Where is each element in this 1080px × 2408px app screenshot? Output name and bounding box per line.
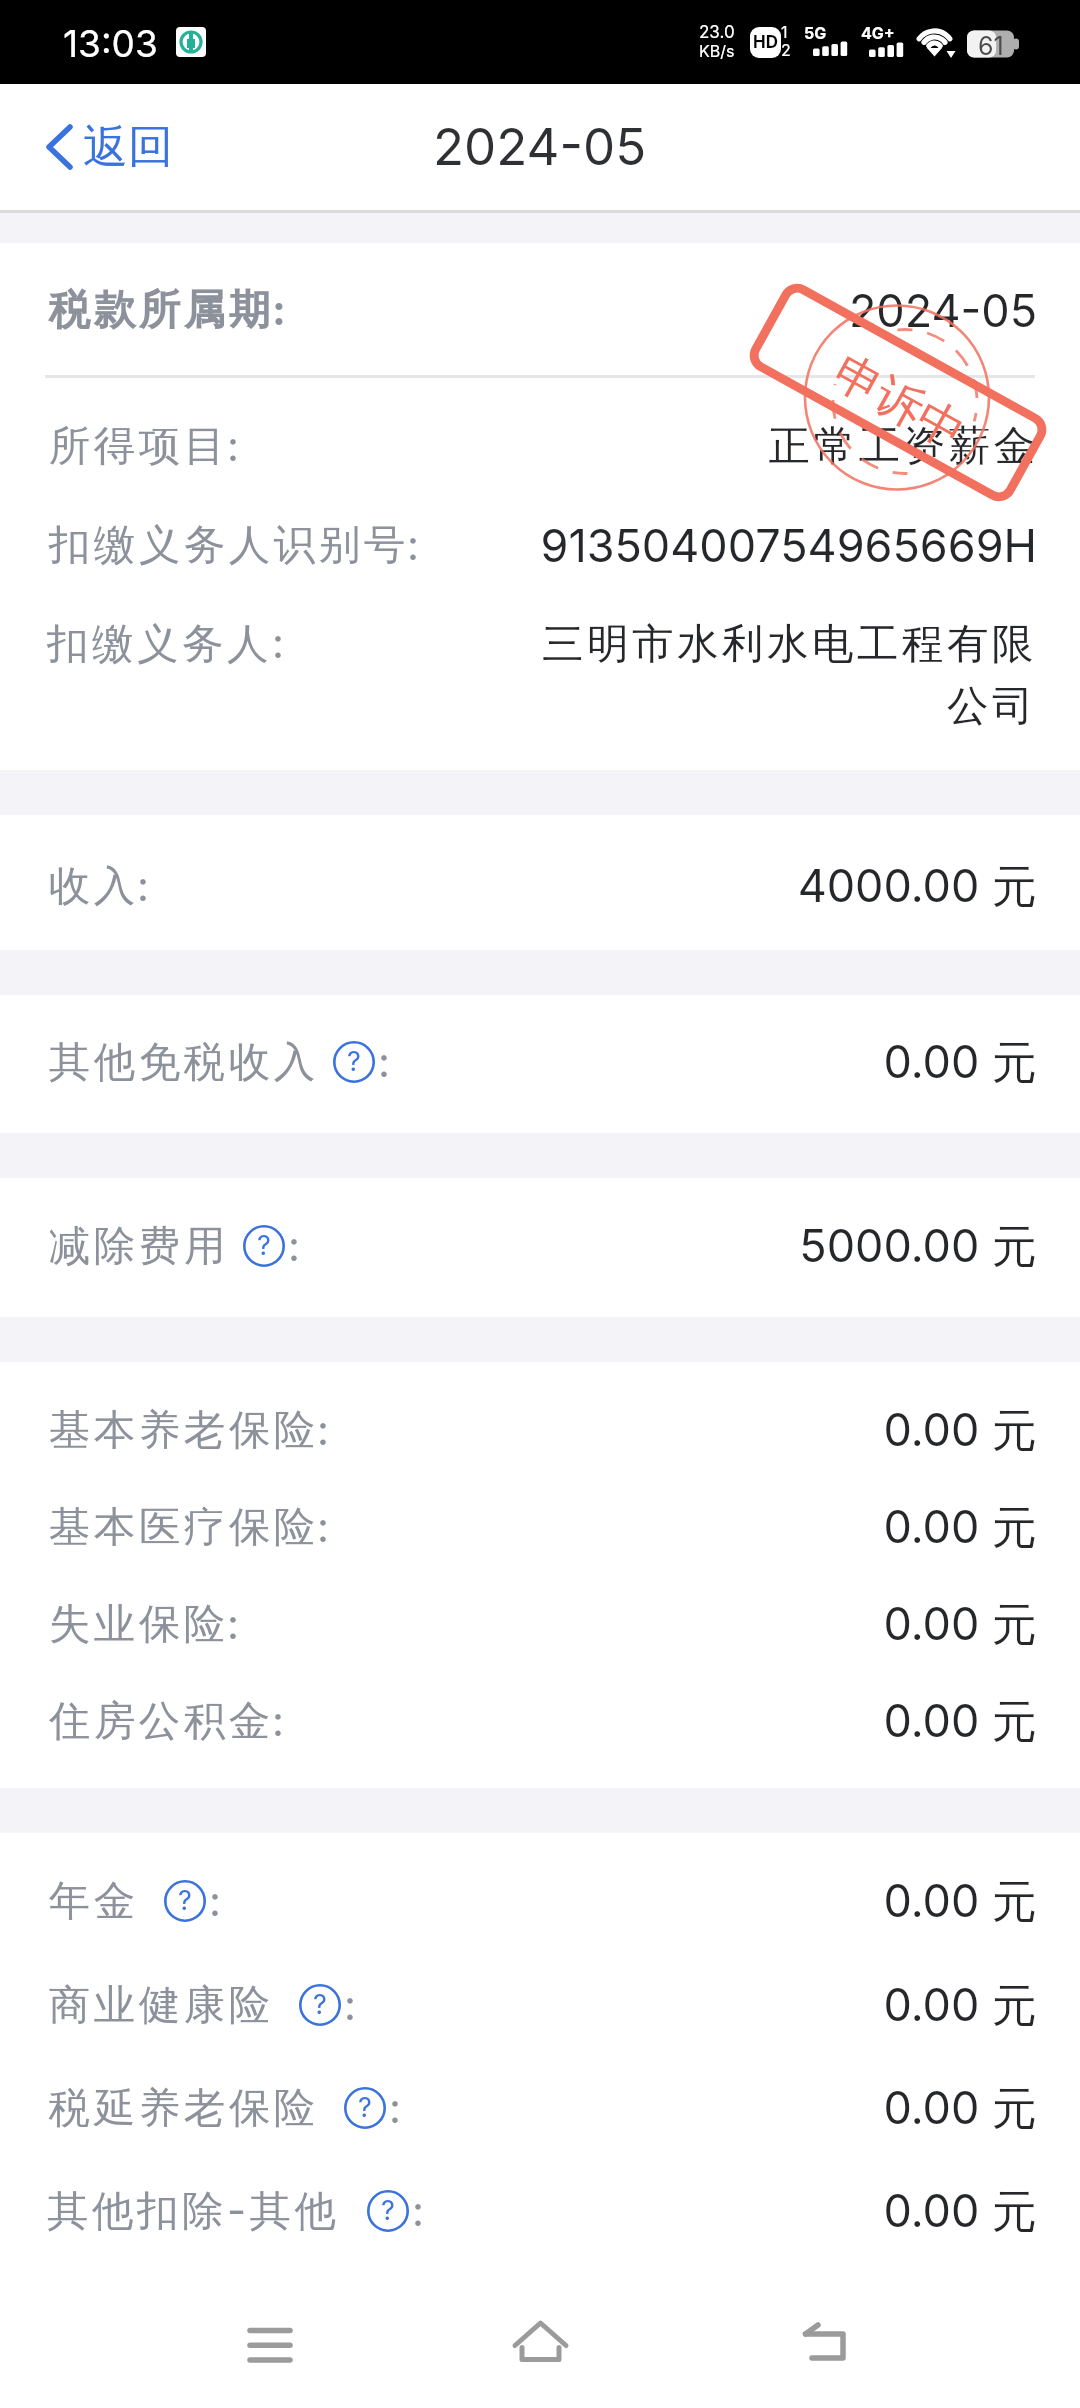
staticText: : (209, 1876, 225, 1926)
staticText: 扣缴义务人识别号 (47, 519, 407, 571)
staticText: 正常工资薪金 (767, 420, 1037, 472)
staticText: 0.00 元 (883, 1977, 1037, 2034)
staticText: ? (178, 1884, 192, 1917)
button[interactable]: 扣缴义务人: (0, 618, 1080, 733)
staticText: 1 (781, 22, 788, 41)
staticText: : (407, 520, 423, 570)
staticText: : (344, 1980, 360, 2030)
staticText: 0.00 元 (883, 1499, 1037, 1556)
staticText: 2024-05 (848, 283, 1037, 337)
button[interactable]: 主页 (480, 2282, 600, 2408)
staticText: 商业健康险 (47, 1979, 272, 2031)
staticText: : (227, 421, 243, 471)
staticText: 税款所属期 (47, 284, 272, 336)
staticText: 住房公积金 (47, 1695, 272, 1747)
staticText: : (272, 285, 290, 335)
staticText: 2024-05 (433, 116, 647, 178)
staticText: 其他扣除-其他 (47, 2185, 340, 2238)
staticText: 13:03 (63, 21, 158, 66)
button[interactable]: 说明 (344, 2087, 386, 2129)
staticText: 返回 (83, 119, 173, 176)
staticText: : (272, 1696, 288, 1746)
button[interactable]: 收入 (0, 837, 1080, 935)
staticText: 扣缴义务人: (47, 618, 288, 671)
button[interactable]: 减除费用 (0, 1197, 1080, 1295)
staticText: ? (313, 1988, 327, 2021)
staticText: 0.00 元 (883, 1693, 1037, 1750)
button[interactable]: 说明 (367, 2190, 409, 2232)
staticText: 2 (781, 40, 791, 59)
button[interactable]: 税款所属期 (0, 261, 1080, 359)
staticText: : (378, 1037, 394, 1087)
staticText: 23.0 (699, 22, 735, 43)
staticText: 其他免税收入 (47, 1036, 317, 1088)
staticText: : (288, 1221, 304, 1271)
staticText: 所得项目 (47, 420, 227, 472)
button[interactable]: 说明 (243, 1225, 285, 1267)
staticText: 4000.00 元 (797, 858, 1037, 915)
button[interactable]: 失业保险 (0, 1575, 1080, 1673)
button[interactable]: 最近任务 (210, 2282, 330, 2408)
button[interactable]: 商业健康险 (0, 1956, 1080, 2054)
staticText: 0.00 元 (883, 2080, 1037, 2137)
staticText: : (137, 861, 153, 911)
staticText: : (317, 1502, 333, 1552)
button[interactable]: 税延养老保险 (0, 2059, 1080, 2157)
button[interactable]: 说明 (164, 1880, 206, 1922)
staticText: 0.00 元 (883, 1596, 1037, 1653)
staticText: 失业保险 (47, 1598, 227, 1650)
staticText: 5G (804, 23, 827, 42)
staticText: ? (358, 2091, 372, 2124)
staticText: 5000.00 元 (799, 1218, 1037, 1275)
staticText: 0.00 元 (883, 1034, 1037, 1091)
staticText: 基本养老保险 (47, 1404, 317, 1456)
staticText: : (317, 1405, 333, 1455)
button[interactable]: 基本养老保险 (0, 1381, 1080, 1479)
staticText: : (389, 2083, 405, 2133)
staticText: 0.00 元 (883, 1873, 1037, 1930)
button[interactable]: 扣缴义务人识别号 (0, 496, 1080, 594)
button[interactable]: 年金 (0, 1852, 1080, 1950)
staticText: 减除费用 (47, 1220, 227, 1272)
staticText: 基本医疗保险 (47, 1501, 317, 1553)
staticText: 0.00 元 (883, 2183, 1037, 2240)
staticText: 4G+ (861, 23, 895, 42)
staticText: 三明市水利水电工程有限公司 (527, 618, 1037, 733)
staticText: : (227, 1599, 243, 1649)
button[interactable]: 说明 (333, 1041, 375, 1083)
button[interactable]: 返回 (0, 84, 197, 210)
button[interactable]: 基本医疗保险 (0, 1478, 1080, 1576)
button[interactable]: 其他扣除-其他 (0, 2162, 1080, 2260)
button[interactable]: 所得项目 (0, 397, 1080, 495)
staticText: : (412, 2186, 428, 2236)
button[interactable]: 其他免税收入 (0, 1013, 1080, 1111)
staticText: 税延养老保险 (47, 2082, 317, 2134)
staticText: 0.00 元 (883, 1402, 1037, 1459)
staticText: 年金 (47, 1875, 137, 1927)
staticText: 收入 (47, 860, 137, 912)
button[interactable]: 说明 (299, 1984, 341, 2026)
button[interactable]: 返回 (764, 2282, 884, 2408)
staticText: ? (381, 2194, 395, 2227)
staticText: 61 (978, 31, 1004, 61)
button[interactable]: 住房公积金 (0, 1672, 1080, 1770)
staticText: KB/s (699, 41, 735, 60)
staticText: ? (257, 1229, 271, 1262)
staticText: 91350400754965669H (540, 518, 1037, 572)
staticText: ? (347, 1045, 361, 1078)
staticText: HD (753, 32, 778, 53)
